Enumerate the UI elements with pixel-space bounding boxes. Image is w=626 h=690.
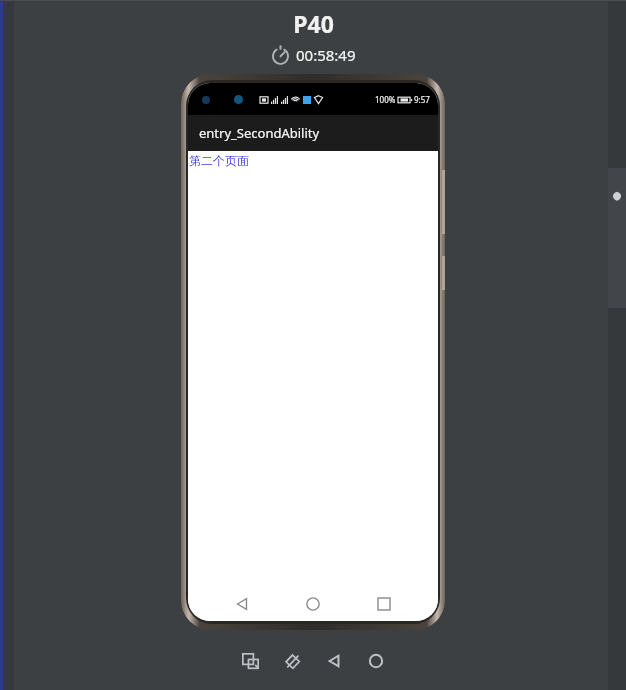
staticText: entry_SecondAbility [199,124,320,142]
button[interactable]: Take screenshot [235,646,265,676]
staticText: 9:57 [414,94,430,105]
button[interactable]: Back [319,646,349,676]
staticText: P40 [293,8,334,39]
button[interactable]: Rotate [277,646,307,676]
button[interactable]: 第二个页面 [189,153,249,168]
button[interactable]: Recent apps [367,587,401,621]
button[interactable]: Home [296,587,330,621]
staticText: 100% [375,94,396,105]
button[interactable]: Back [225,587,259,621]
button[interactable]: Home [361,646,391,676]
staticText: 00:58:49 [296,45,356,65]
